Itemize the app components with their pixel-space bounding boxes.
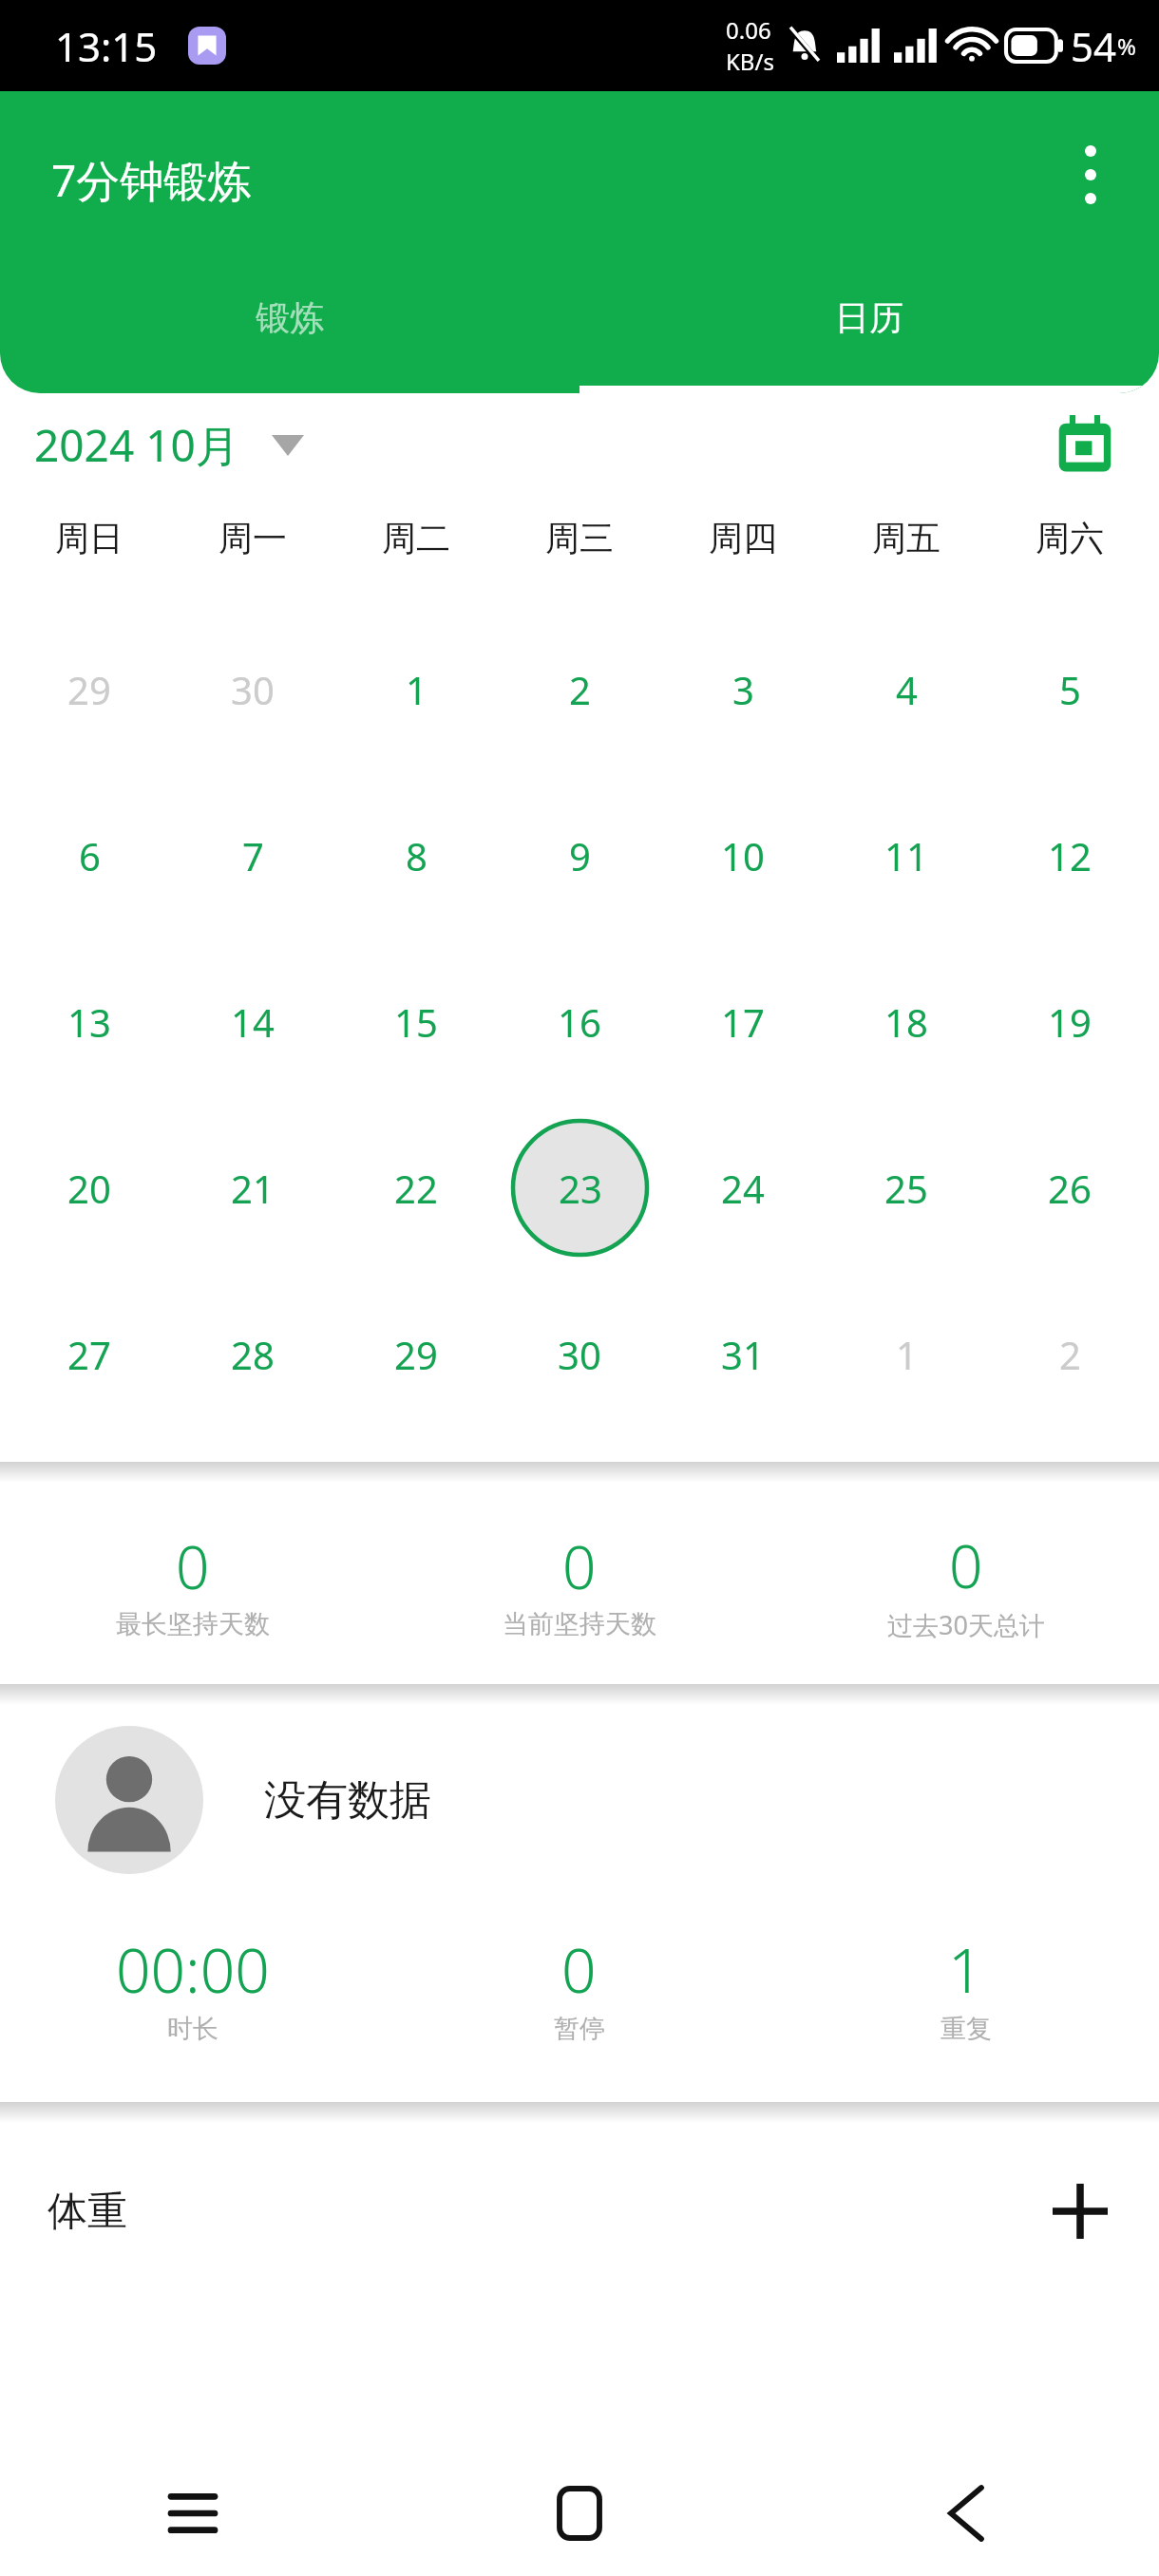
button[interactable]: 11: [825, 772, 988, 938]
button[interactable]: 31: [661, 1271, 825, 1437]
button[interactable]: 0: [772, 1525, 1159, 1642]
staticText: 27: [67, 1329, 111, 1380]
button[interactable]: Home: [386, 2451, 772, 2576]
button[interactable]: 2: [498, 606, 661, 772]
button[interactable]: 1: [334, 606, 498, 772]
staticText: 1: [406, 664, 427, 715]
staticText: 30: [231, 664, 275, 715]
button[interactable]: 10: [661, 772, 825, 938]
staticText: 29: [394, 1329, 438, 1380]
staticText: 14: [231, 996, 275, 1048]
staticText: 0: [176, 1526, 210, 1606]
staticText: 0: [561, 1928, 597, 2011]
staticText: 日历: [835, 296, 903, 339]
button[interactable]: 1: [772, 1928, 1159, 2045]
button[interactable]: 8: [334, 772, 498, 938]
staticText: 12: [1048, 830, 1092, 881]
staticText: 0: [949, 1525, 983, 1605]
button[interactable]: 7: [171, 772, 334, 938]
button[interactable]: 日历: [579, 270, 1159, 393]
staticText: 17: [721, 996, 765, 1048]
button[interactable]: 20: [8, 1105, 171, 1271]
button[interactable]: 23: [498, 1105, 661, 1271]
staticText: 3: [732, 664, 754, 715]
button[interactable]: 锻炼: [0, 270, 579, 393]
staticText: 26: [1048, 1163, 1092, 1214]
staticText: 周日: [55, 517, 123, 559]
staticText: 7分钟锻炼: [51, 150, 252, 210]
staticText: 1: [948, 1928, 983, 2011]
button[interactable]: 14: [171, 938, 334, 1105]
button[interactable]: 27: [8, 1271, 171, 1437]
staticText: KB/s: [726, 46, 774, 77]
button[interactable]: Jump to today: [1039, 399, 1130, 490]
button[interactable]: 26: [988, 1105, 1151, 1271]
staticText: 31: [721, 1329, 765, 1380]
staticText: 8: [406, 830, 427, 881]
button[interactable]: 0: [0, 1526, 386, 1640]
button[interactable]: 13: [8, 938, 171, 1105]
staticText: 重复: [940, 2013, 992, 2045]
staticText: 7: [242, 830, 264, 881]
staticText: 0.06: [726, 14, 771, 46]
button[interactable]: 5: [988, 606, 1151, 772]
staticText: %: [1117, 30, 1136, 62]
staticText: 23: [559, 1163, 602, 1214]
button[interactable]: 30: [498, 1271, 661, 1437]
staticText: 13:15: [55, 19, 158, 73]
staticText: 时长: [167, 2013, 218, 2045]
staticText: 2: [1059, 1329, 1081, 1380]
staticText: 4: [896, 664, 918, 715]
button[interactable]: Back: [772, 2451, 1159, 2576]
button[interactable]: 21: [171, 1105, 334, 1271]
staticText: 2024 10月: [34, 415, 239, 475]
button[interactable]: 17: [661, 938, 825, 1105]
staticText: 周六: [1035, 517, 1104, 559]
staticText: 25: [884, 1163, 928, 1214]
button[interactable]: 15: [334, 938, 498, 1105]
button[interactable]: 24: [661, 1105, 825, 1271]
staticText: 13: [67, 996, 111, 1048]
button[interactable]: 4: [825, 606, 988, 772]
button[interactable]: 没有数据: [0, 1705, 1159, 1895]
button[interactable]: 29: [8, 606, 171, 772]
button[interactable]: 28: [171, 1271, 334, 1437]
staticText: 0: [562, 1526, 597, 1606]
button[interactable]: 2024 10月: [34, 415, 304, 475]
staticText: 19: [1048, 996, 1092, 1048]
button[interactable]: Recents: [0, 2451, 386, 2576]
staticText: 6: [79, 830, 101, 881]
staticText: 体重: [47, 2187, 127, 2237]
staticText: 11: [884, 830, 928, 881]
staticText: 没有数据: [264, 1774, 431, 1827]
button[interactable]: 1: [825, 1271, 988, 1437]
button[interactable]: 16: [498, 938, 661, 1105]
staticText: 周五: [872, 517, 940, 559]
button[interactable]: 19: [988, 938, 1151, 1105]
button[interactable]: 3: [661, 606, 825, 772]
button[interactable]: 6: [8, 772, 171, 938]
staticText: 暂停: [554, 2013, 605, 2045]
staticText: 过去30天总计: [887, 1607, 1045, 1642]
button[interactable]: 30: [171, 606, 334, 772]
staticText: 28: [231, 1329, 275, 1380]
button[interactable]: 体重: [0, 2123, 1159, 2300]
button[interactable]: 22: [334, 1105, 498, 1271]
button[interactable]: 29: [334, 1271, 498, 1437]
staticText: 当前坚持天数: [503, 1608, 656, 1640]
button[interactable]: 0: [386, 1928, 772, 2045]
button[interactable]: 12: [988, 772, 1151, 938]
staticText: 周四: [709, 517, 777, 559]
button[interactable]: 0: [386, 1526, 772, 1640]
staticText: 2: [569, 664, 591, 715]
button[interactable]: Add weight: [1028, 2159, 1132, 2263]
button[interactable]: More options: [1045, 129, 1136, 220]
button[interactable]: 9: [498, 772, 661, 938]
staticText: 21: [231, 1163, 275, 1214]
button[interactable]: 25: [825, 1105, 988, 1271]
button[interactable]: 18: [825, 938, 988, 1105]
staticText: 最长坚持天数: [116, 1608, 270, 1640]
staticText: 周一: [218, 517, 287, 559]
button[interactable]: 2: [988, 1271, 1151, 1437]
button[interactable]: 00:00: [0, 1928, 386, 2045]
